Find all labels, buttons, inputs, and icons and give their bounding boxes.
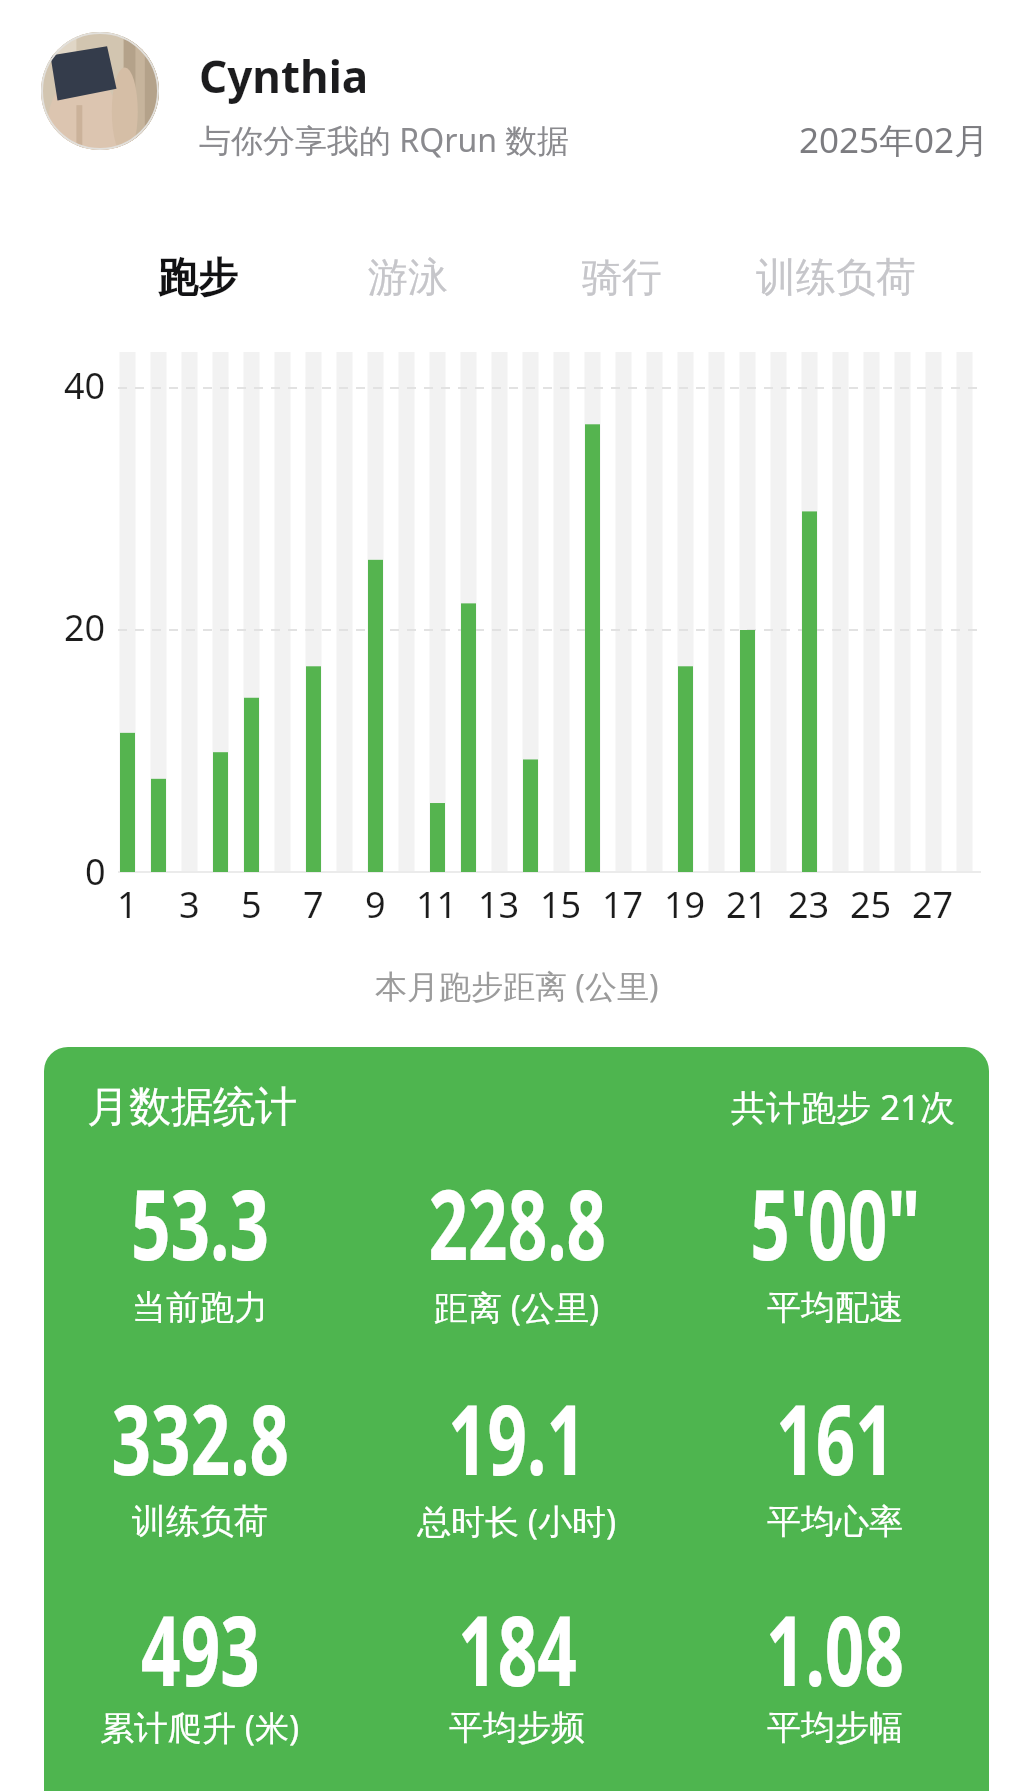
staticText: 15 <box>540 880 582 929</box>
staticText: 332.8 <box>112 1372 289 1503</box>
staticText: 跑步 <box>158 252 238 302</box>
staticText: 5'00" <box>750 1157 921 1288</box>
staticText: 当前跑力 <box>132 1286 268 1329</box>
staticText: 27 <box>912 880 954 929</box>
staticText: 0 <box>85 847 106 896</box>
staticText: 9 <box>365 880 386 929</box>
staticText: 17 <box>602 880 644 929</box>
staticText: 骑行 <box>582 252 662 302</box>
staticText: 本月跑步距离 (公里) <box>375 964 659 1008</box>
staticText: 11 <box>416 880 458 929</box>
button[interactable] <box>41 32 159 150</box>
staticText: 距离 (公里) <box>434 1284 600 1330</box>
staticText: 累计爬升 (米) <box>100 1704 300 1750</box>
staticText: 184 <box>458 1583 577 1714</box>
staticText: 总时长 (小时) <box>417 1498 617 1544</box>
staticText: 月数据统计 <box>87 1081 297 1134</box>
staticText: 与你分享我的 RQrun 数据 <box>199 118 570 162</box>
staticText: 2025年02月 <box>799 116 990 164</box>
staticText: 40 <box>64 361 106 410</box>
staticText: 493 <box>141 1583 260 1714</box>
staticText: Cynthia <box>199 46 369 106</box>
staticText: 训练负荷 <box>756 252 916 302</box>
staticText: 1 <box>117 880 138 929</box>
staticText: 平均配速 <box>767 1286 903 1329</box>
staticText: 20 <box>64 603 106 652</box>
staticText: 19 <box>664 880 706 929</box>
staticText: 共计跑步 21次 <box>731 1083 956 1131</box>
staticText: 训练负荷 <box>132 1500 268 1543</box>
staticText: 平均心率 <box>767 1500 903 1543</box>
staticText: 23 <box>788 880 830 929</box>
staticText: 21 <box>726 880 768 929</box>
staticText: 13 <box>478 880 520 929</box>
staticText: 161 <box>776 1372 895 1503</box>
staticText: 7 <box>303 880 324 929</box>
button[interactable]: 游泳 <box>328 242 488 312</box>
button[interactable]: 骑行 <box>542 242 702 312</box>
staticText: 19.1 <box>448 1372 586 1503</box>
staticText: 3 <box>179 880 200 929</box>
button[interactable]: 跑步 <box>118 242 278 312</box>
staticText: 游泳 <box>368 252 448 302</box>
staticText: 平均步频 <box>449 1706 585 1749</box>
staticText: 平均步幅 <box>767 1706 903 1749</box>
staticText: 1.08 <box>766 1583 904 1714</box>
button[interactable] <box>44 1047 989 1791</box>
staticText: 228.8 <box>429 1157 606 1288</box>
staticText: 25 <box>850 880 892 929</box>
staticText: 53.3 <box>131 1157 269 1288</box>
button[interactable]: 训练负荷 <box>726 242 946 312</box>
staticText: 5 <box>241 880 262 929</box>
